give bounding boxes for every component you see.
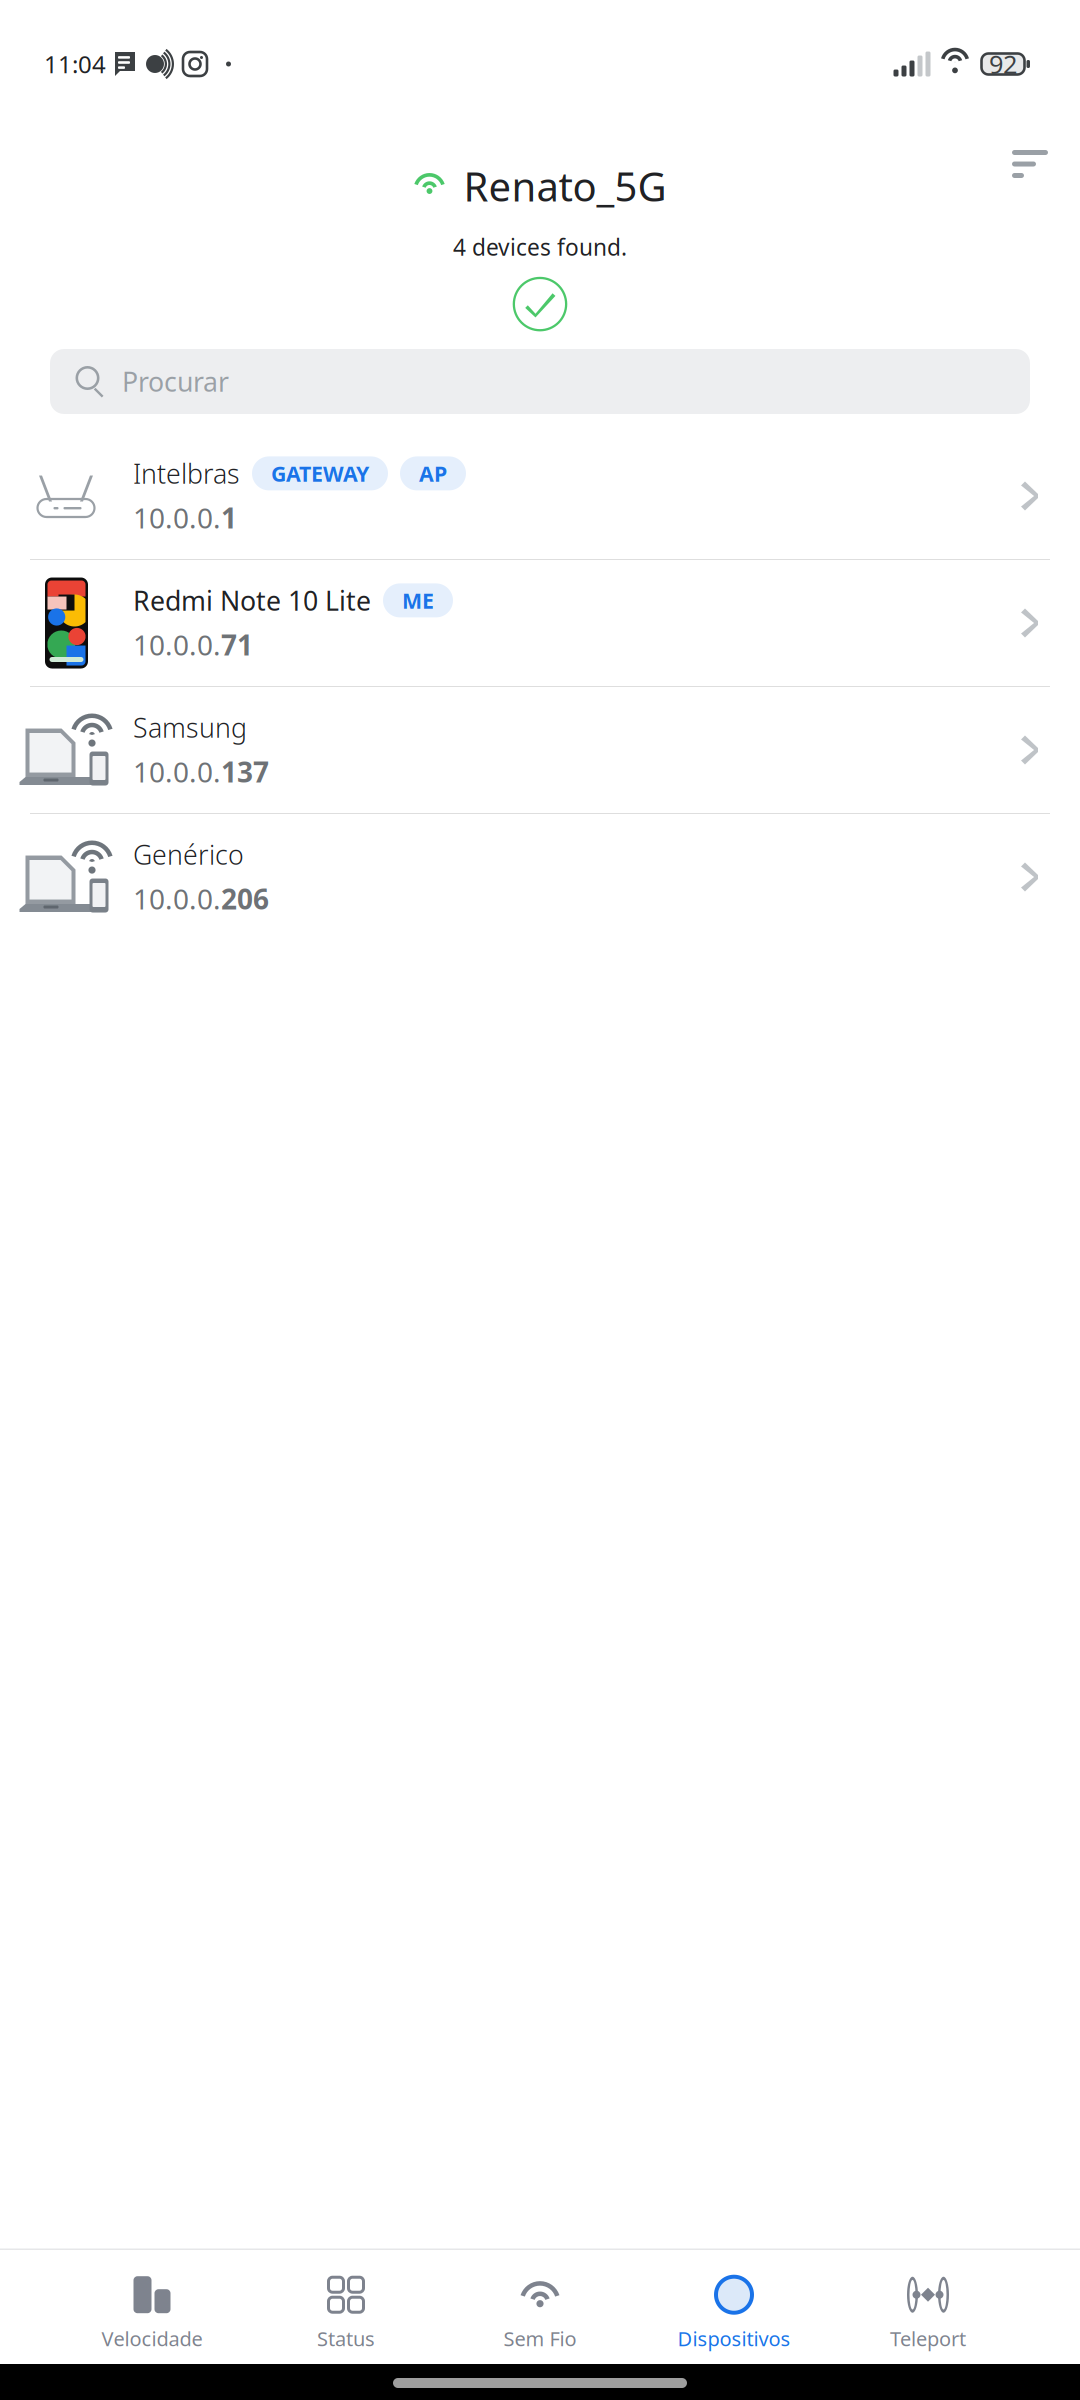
staticText: 11:04: [44, 48, 106, 80]
button[interactable]: Samsung: [0, 687, 1080, 813]
staticText: Redmi Note 10 Lite: [133, 583, 371, 618]
button[interactable]: Procurar: [0, 349, 1080, 414]
staticText: 10.0.0.: [133, 499, 221, 536]
staticText: Samsung: [133, 710, 247, 745]
staticText: Renato_5G: [463, 159, 666, 212]
staticText: Dispositivos: [677, 2325, 790, 2352]
button[interactable]: Intelbras: [0, 433, 1080, 559]
staticText: Intelbras: [133, 456, 240, 491]
staticText: 137: [221, 753, 269, 790]
staticText: 10.0.0.: [133, 880, 221, 917]
staticText: ME: [402, 586, 434, 614]
button[interactable]: Velocidade: [55, 2249, 249, 2365]
staticText: 206: [221, 880, 269, 917]
staticText: 71: [221, 626, 253, 663]
button[interactable]: Teleport: [831, 2249, 1025, 2365]
button[interactable]: Dispositivos: [637, 2249, 831, 2365]
staticText: Procurar: [122, 364, 229, 399]
button[interactable]: Sem Fio: [443, 2249, 637, 2365]
staticText: GATEWAY: [271, 459, 369, 487]
staticText: 10.0.0.: [133, 626, 221, 663]
staticText: Status: [317, 2325, 375, 2352]
staticText: Sem Fio: [503, 2325, 576, 2352]
staticText: 10.0.0.: [133, 753, 221, 790]
staticText: AP: [419, 459, 447, 487]
staticText: Teleport: [890, 2325, 966, 2352]
staticText: Velocidade: [101, 2325, 202, 2352]
staticText: Genérico: [133, 837, 244, 872]
staticText: 92: [989, 47, 1017, 81]
staticText: 4 devices found.: [453, 232, 627, 262]
button[interactable]: Genérico: [0, 814, 1080, 940]
button[interactable]: Status: [249, 2249, 443, 2365]
staticText: 1: [221, 499, 237, 536]
button[interactable]: Sort: [992, 130, 1068, 198]
button[interactable]: Redmi Note 10 Lite: [0, 560, 1080, 686]
